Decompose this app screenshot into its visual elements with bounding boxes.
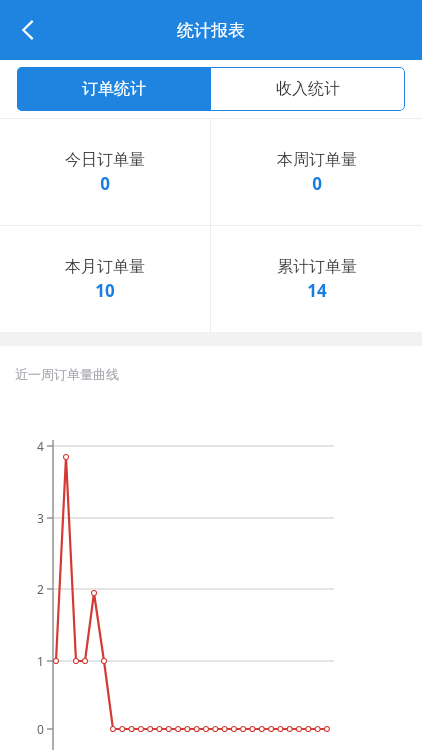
staticText: 收入统计: [276, 79, 340, 99]
button[interactable]: 订单统计: [17, 67, 211, 111]
button[interactable]: 今日订单量: [0, 119, 210, 225]
staticText: 3: [37, 510, 44, 526]
button[interactable]: 收入统计: [211, 67, 405, 111]
staticText: 近一周订单量曲线: [15, 366, 119, 382]
staticText: 4: [37, 438, 44, 454]
staticText: 10: [95, 279, 115, 302]
staticText: 14: [307, 279, 327, 302]
staticText: 累计订单量: [277, 257, 357, 277]
staticText: 本月订单量: [65, 257, 145, 277]
staticText: 0: [100, 172, 110, 195]
button[interactable]: Back: [7, 9, 49, 51]
staticText: 2: [37, 581, 44, 597]
staticText: 今日订单量: [65, 150, 145, 170]
staticText: 订单统计: [82, 79, 146, 99]
button[interactable]: 累计订单量: [211, 226, 422, 332]
staticText: 本周订单量: [277, 150, 357, 170]
staticText: 统计报表: [177, 20, 245, 41]
button[interactable]: 本周订单量: [211, 119, 422, 225]
button[interactable]: 本月订单量: [0, 226, 210, 332]
staticText: 0: [37, 721, 44, 737]
staticText: 0: [312, 172, 322, 195]
staticText: 1: [37, 653, 44, 669]
